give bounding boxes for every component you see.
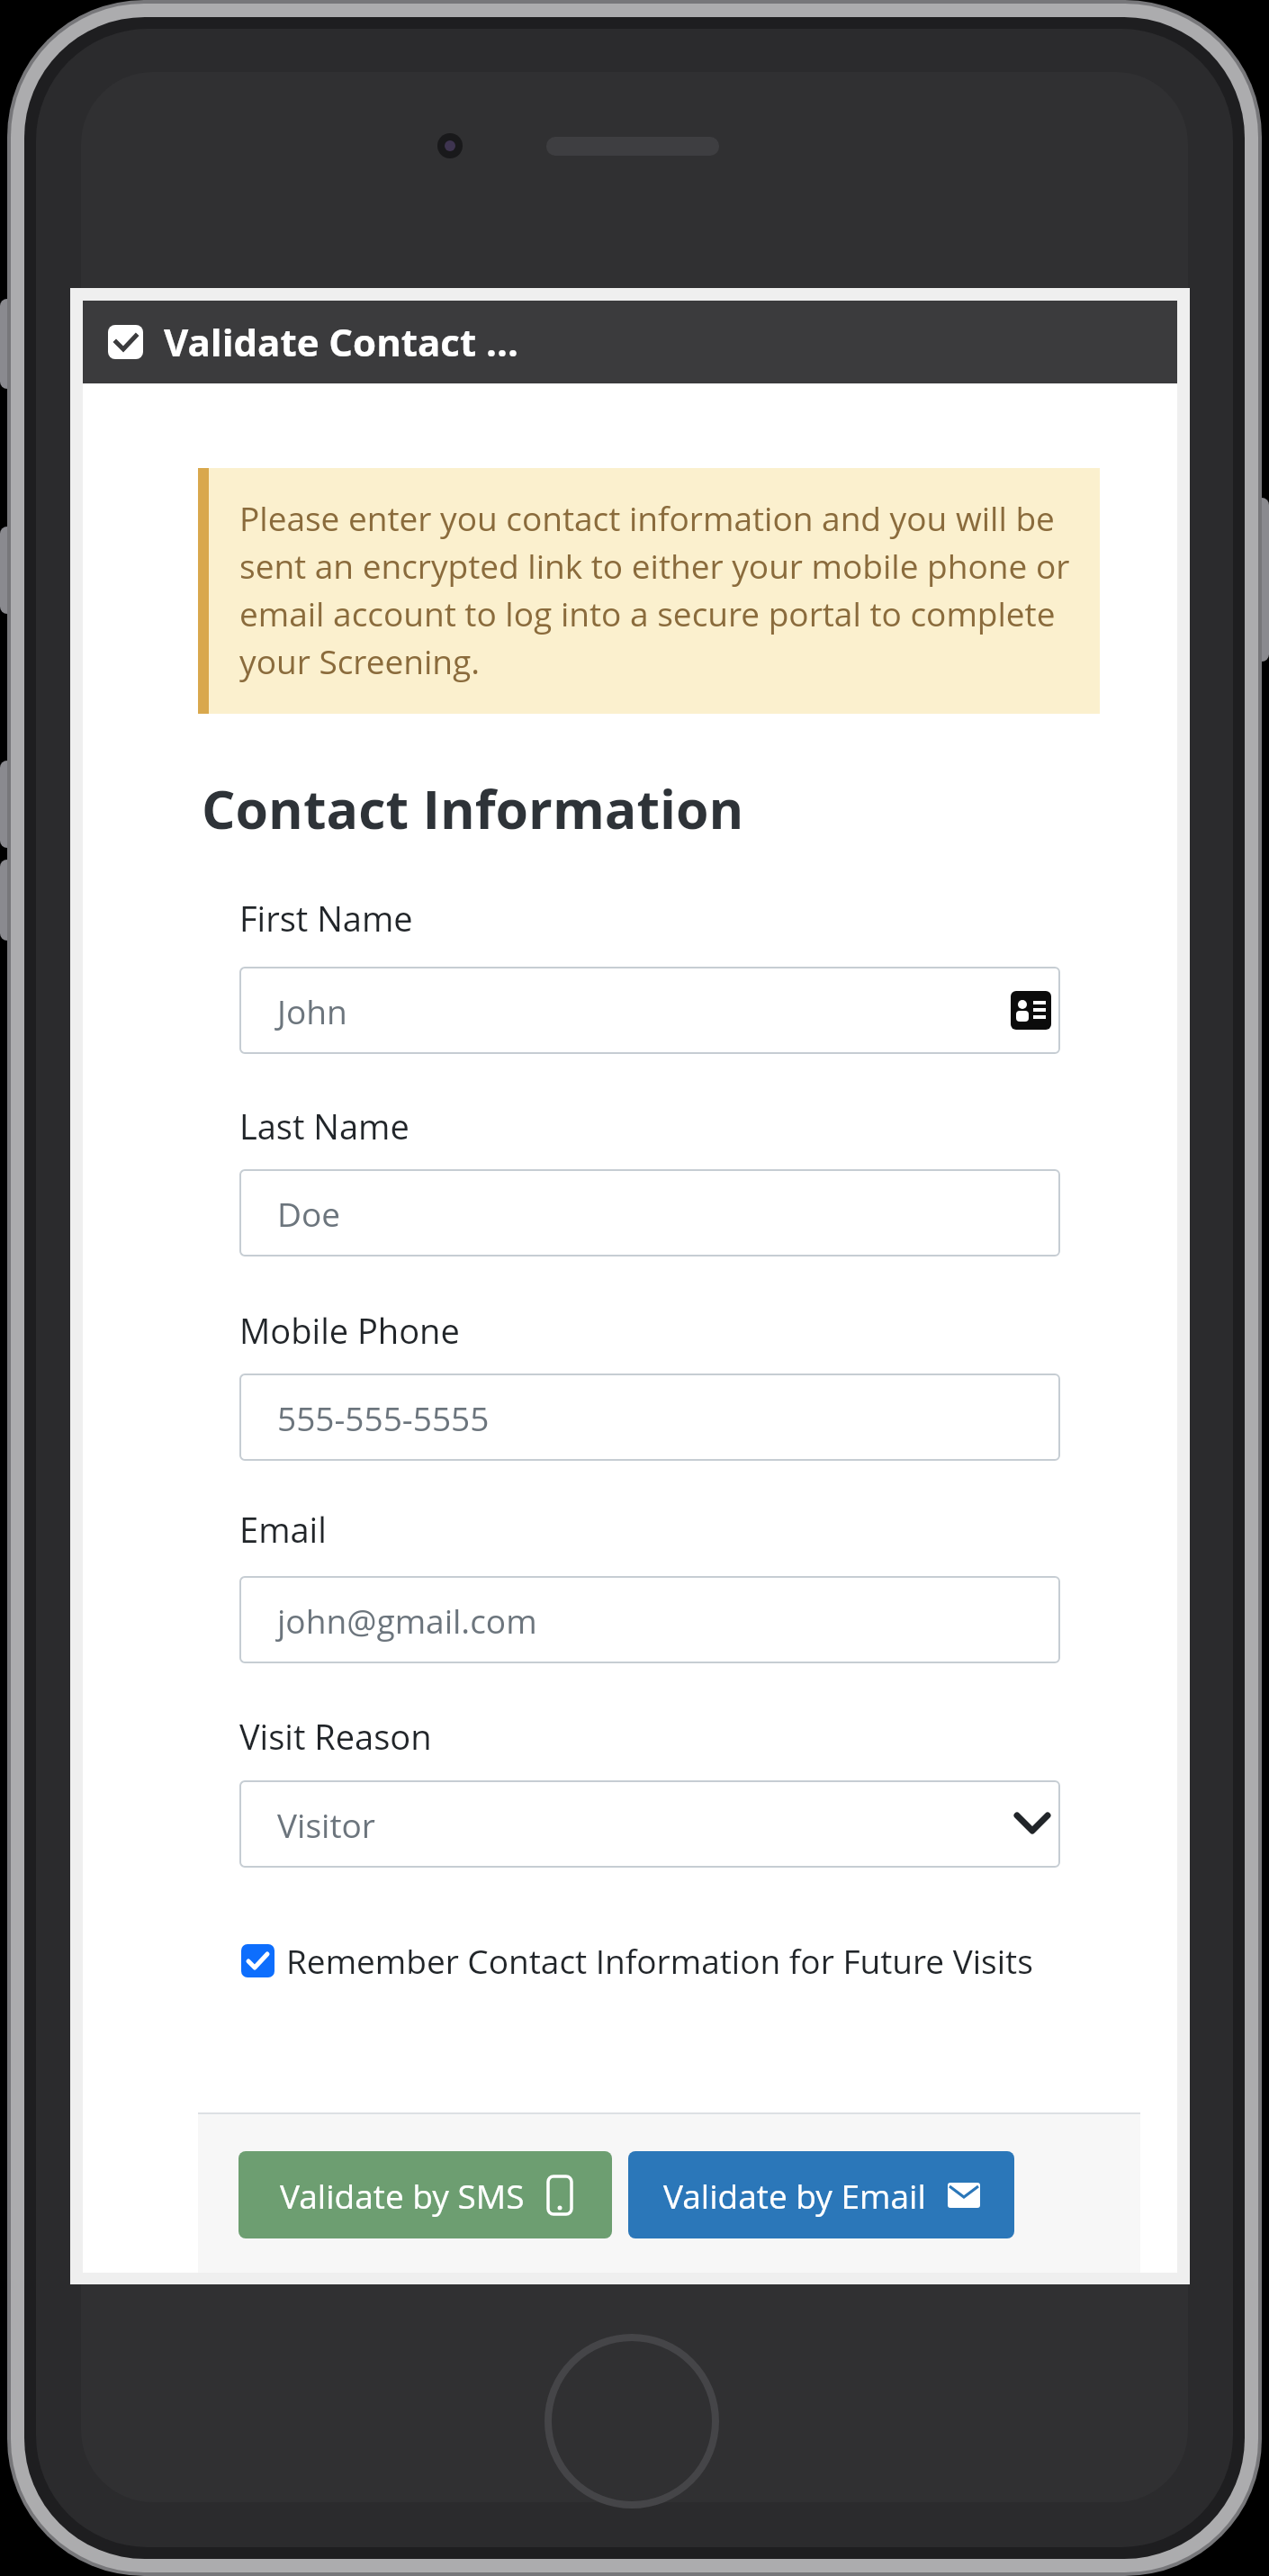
staticText: Contact Information: [202, 772, 744, 844]
staticText: Doe: [277, 1191, 341, 1236]
staticText: 555-555-5555: [277, 1395, 490, 1440]
staticText: John: [277, 988, 347, 1033]
staticText: Visit Reason: [239, 1713, 432, 1760]
staticText: First Name: [239, 895, 413, 941]
staticText: john@gmail.com: [277, 1598, 537, 1643]
button[interactable]: Doe: [239, 1169, 1060, 1256]
staticText: Visitor: [277, 1802, 375, 1847]
button[interactable]: john@gmail.com: [239, 1576, 1060, 1663]
button[interactable]: John: [239, 967, 1060, 1054]
staticText: Validate by SMS: [280, 2173, 525, 2218]
button[interactable]: Validate by SMS: [238, 2151, 612, 2238]
button[interactable]: Validate by Email: [628, 2151, 1014, 2238]
staticText: Remember Contact Information for Future …: [286, 1938, 1033, 1983]
button[interactable]: Visitor: [239, 1780, 1060, 1868]
button[interactable]: 555-555-5555: [239, 1374, 1060, 1461]
staticText: Validate by Email: [663, 2173, 926, 2218]
button[interactable]: Remember Contact Information for Future …: [241, 1938, 1033, 1983]
staticText: Email: [239, 1506, 327, 1553]
staticText: Validate Contact ...: [164, 316, 518, 367]
staticText: Last Name: [239, 1103, 409, 1149]
staticText: Please enter you contact information and…: [239, 495, 1070, 683]
staticText: Mobile Phone: [239, 1307, 460, 1354]
